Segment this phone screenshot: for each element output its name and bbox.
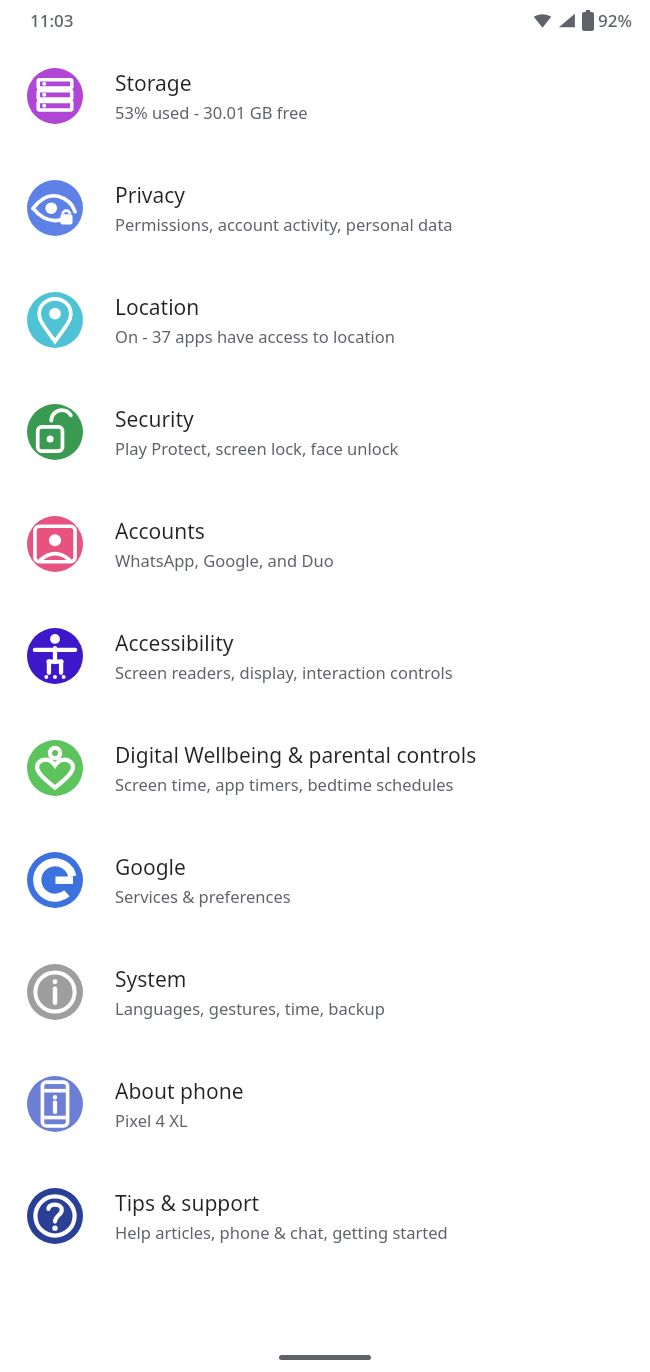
- staticText: Tips & support: [115, 1189, 260, 1218]
- staticText: On - 37 apps have access to location: [115, 325, 395, 347]
- staticText: Permissions, account activity, personal …: [115, 213, 453, 235]
- staticText: Help articles, phone & chat, getting sta…: [115, 1221, 448, 1243]
- button[interactable]: Privacy: [0, 152, 650, 264]
- button[interactable]: System: [0, 936, 650, 1048]
- staticText: System: [115, 965, 187, 994]
- staticText: 11:03: [30, 9, 74, 32]
- staticText: Services & preferences: [115, 885, 291, 907]
- staticText: 53% used - 30.01 GB free: [115, 101, 308, 123]
- staticText: About phone: [115, 1077, 244, 1106]
- button[interactable]: Security: [0, 376, 650, 488]
- button[interactable]: Google: [0, 824, 650, 936]
- staticText: Location: [115, 293, 200, 322]
- button[interactable]: Accounts: [0, 488, 650, 600]
- button[interactable]: About phone: [0, 1048, 650, 1160]
- staticText: WhatsApp, Google, and Duo: [115, 549, 334, 571]
- staticText: Languages, gestures, time, backup: [115, 997, 385, 1019]
- staticText: Privacy: [115, 181, 186, 210]
- staticText: Pixel 4 XL: [115, 1109, 188, 1131]
- staticText: Security: [115, 405, 194, 434]
- staticText: Play Protect, screen lock, face unlock: [115, 437, 399, 459]
- staticText: Screen readers, display, interaction con…: [115, 661, 453, 683]
- button[interactable]: Sound: [0, 0, 650, 40]
- staticText: Accounts: [115, 517, 205, 546]
- button[interactable]: Tips & support: [0, 1160, 650, 1272]
- staticText: Screen time, app timers, bedtime schedul…: [115, 773, 454, 795]
- staticText: Digital Wellbeing & parental controls: [115, 741, 477, 770]
- button[interactable]: Accessibility: [0, 600, 650, 712]
- button[interactable]: Location: [0, 264, 650, 376]
- staticText: Storage: [115, 69, 192, 98]
- staticText: Accessibility: [115, 629, 234, 658]
- button[interactable]: Storage: [0, 40, 650, 152]
- staticText: Google: [115, 853, 186, 882]
- button[interactable]: Digital Wellbeing & parental controls: [0, 712, 650, 824]
- staticText: 92%: [598, 9, 632, 32]
